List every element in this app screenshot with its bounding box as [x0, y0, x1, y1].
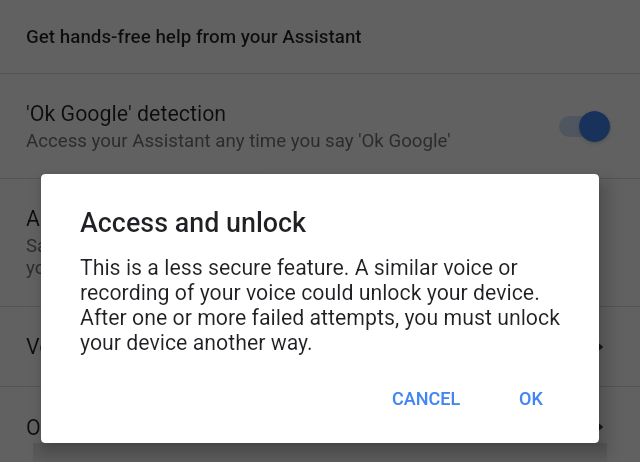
button[interactable]: Open offline speech recognition — [579, 407, 619, 447]
button[interactable]: Access with Voice Match — [0, 179, 640, 306]
button[interactable]: 'Ok Google' detection — [0, 74, 640, 178]
staticText: OK — [519, 388, 543, 409]
button[interactable]: Open Voice Match — [579, 327, 619, 367]
staticText: 'Ok Google' detection — [26, 101, 227, 126]
staticText: Access and unlock — [80, 207, 307, 239]
staticText: Voice Match — [26, 334, 145, 359]
staticText: Say 'Ok Google' to unlock your phone, yo… — [26, 235, 335, 279]
button[interactable]: CANCEL — [376, 379, 477, 418]
staticText: Get hands-free help from your Assistant — [26, 26, 362, 48]
button[interactable]: Offline speech recognition — [0, 387, 640, 462]
button[interactable]: OK — [503, 379, 559, 418]
staticText: This is a less secure feature. A similar… — [80, 255, 571, 355]
staticText: Offline speech recognition — [26, 415, 274, 440]
button[interactable]: 'Ok Google' detection on — [559, 106, 622, 146]
staticText: Access with Voice Match — [26, 206, 266, 231]
staticText: Access your Assistant any time you say '… — [26, 130, 451, 152]
button[interactable]: Voice Match — [0, 307, 640, 386]
staticText: CANCEL — [392, 388, 461, 409]
